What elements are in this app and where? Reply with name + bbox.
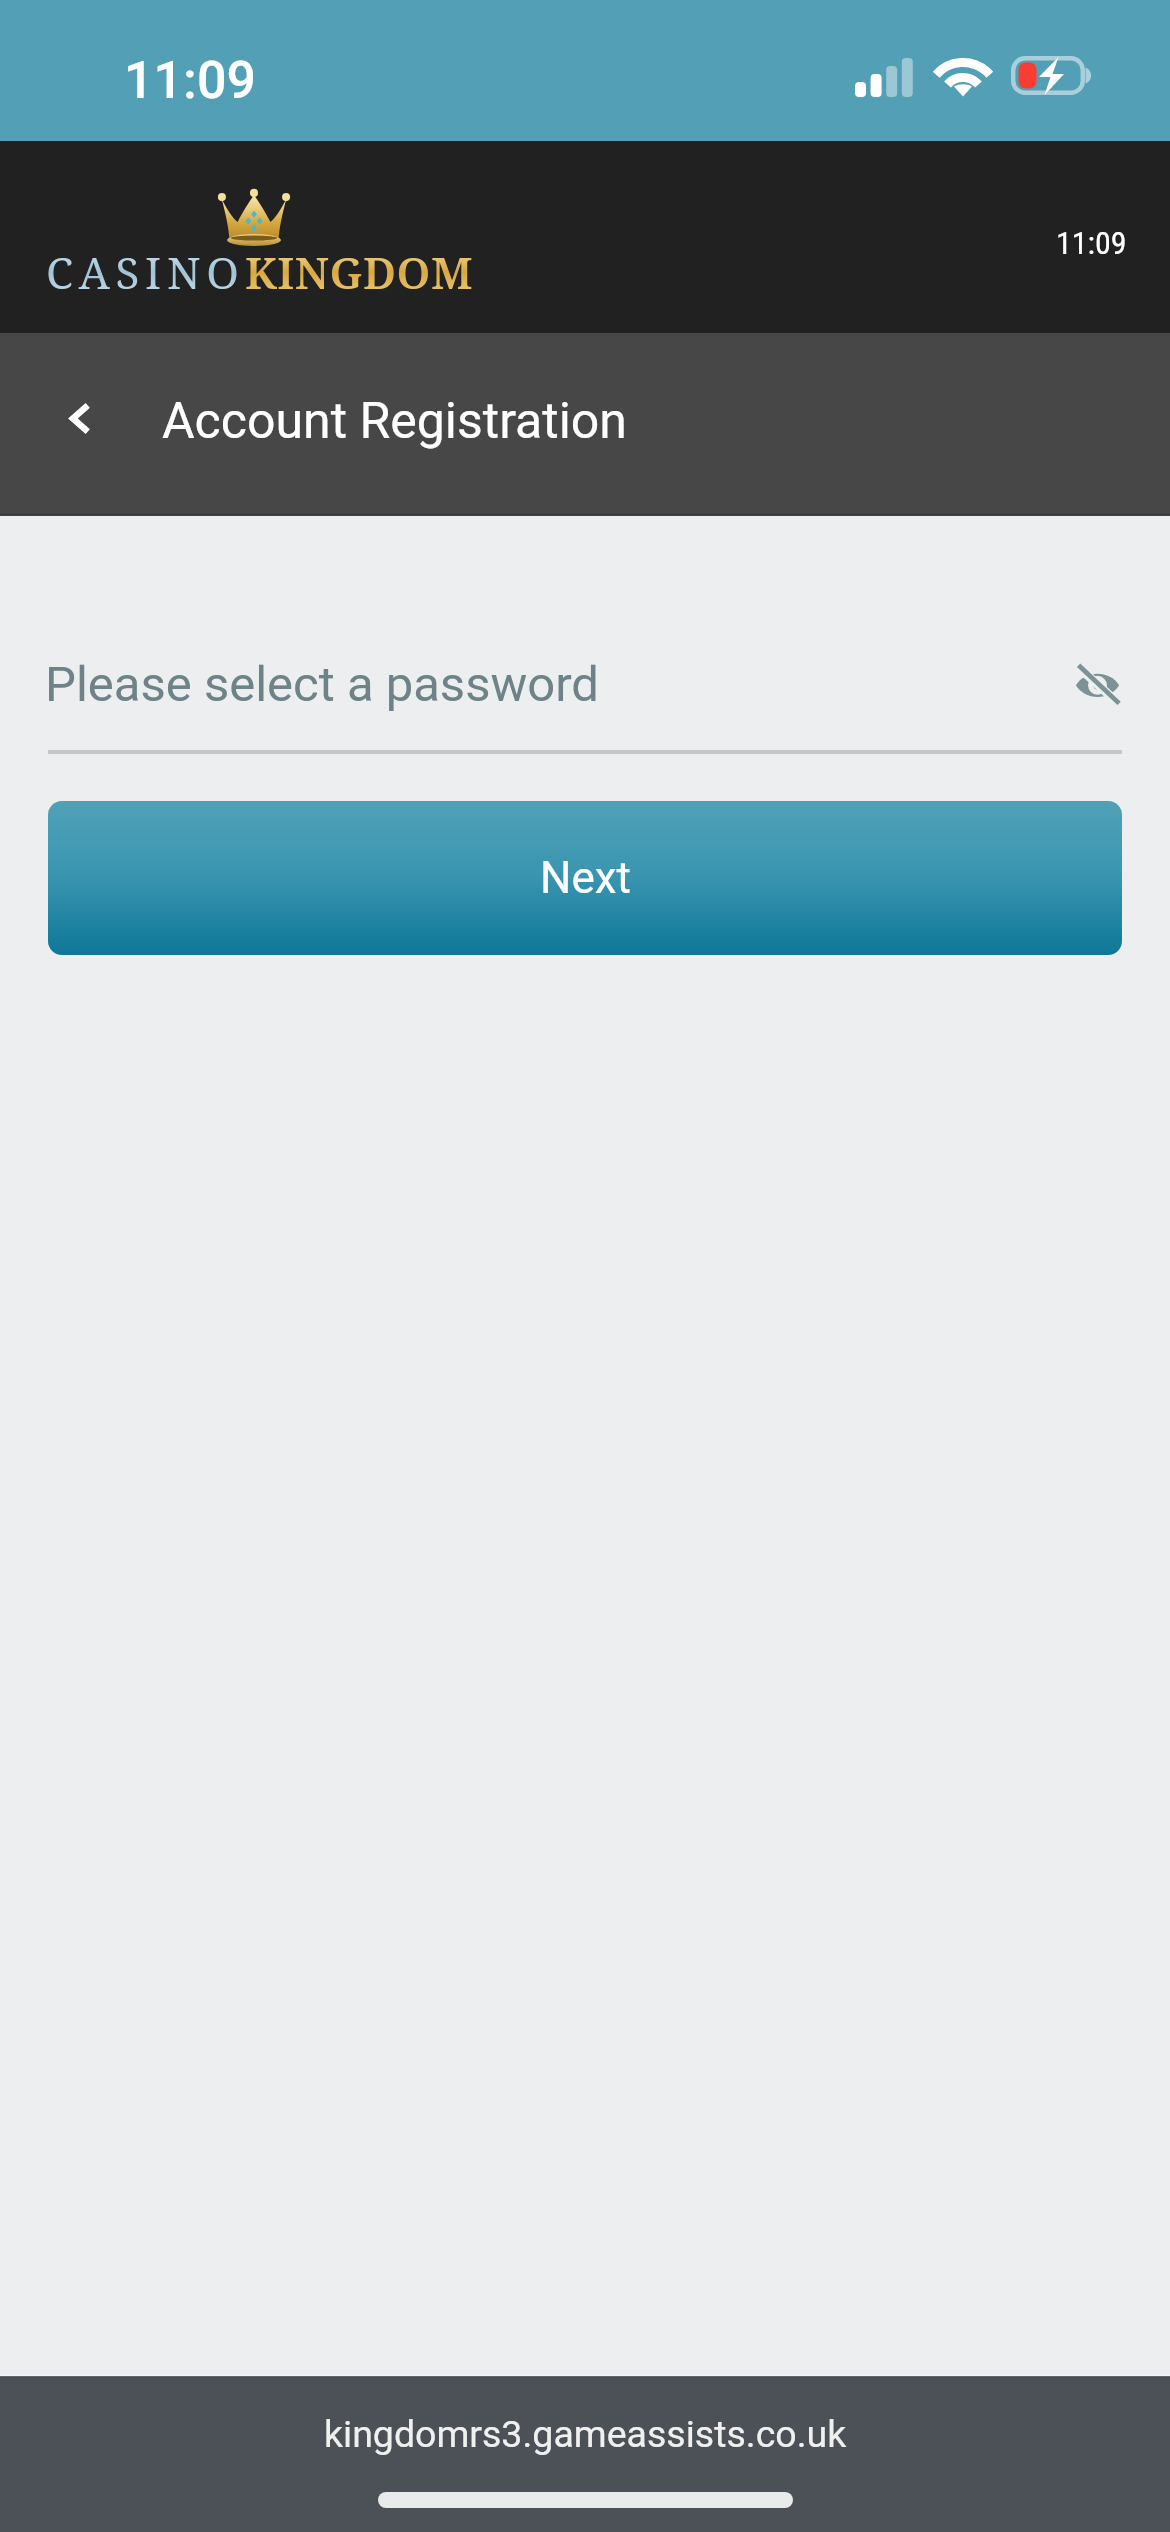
staticText: Account Registration <box>162 392 627 451</box>
button[interactable]: kingdomrs3.gameassists.co.uk <box>275 2399 895 2471</box>
staticText: Next <box>540 852 631 904</box>
staticText: 11:09 <box>124 50 257 111</box>
staticText: 11:09 <box>1056 224 1127 262</box>
staticText: KINGDOM <box>245 242 474 302</box>
staticText: Please select a password <box>45 656 600 713</box>
staticText: kingdomrs3.gameassists.co.uk <box>324 2412 847 2456</box>
staticText: CASINO <box>46 242 245 302</box>
button[interactable]: Show password <box>1064 651 1130 717</box>
button[interactable]: Please select a password <box>45 639 1122 729</box>
button[interactable]: Next <box>48 801 1122 955</box>
button[interactable]: Back <box>40 378 120 458</box>
